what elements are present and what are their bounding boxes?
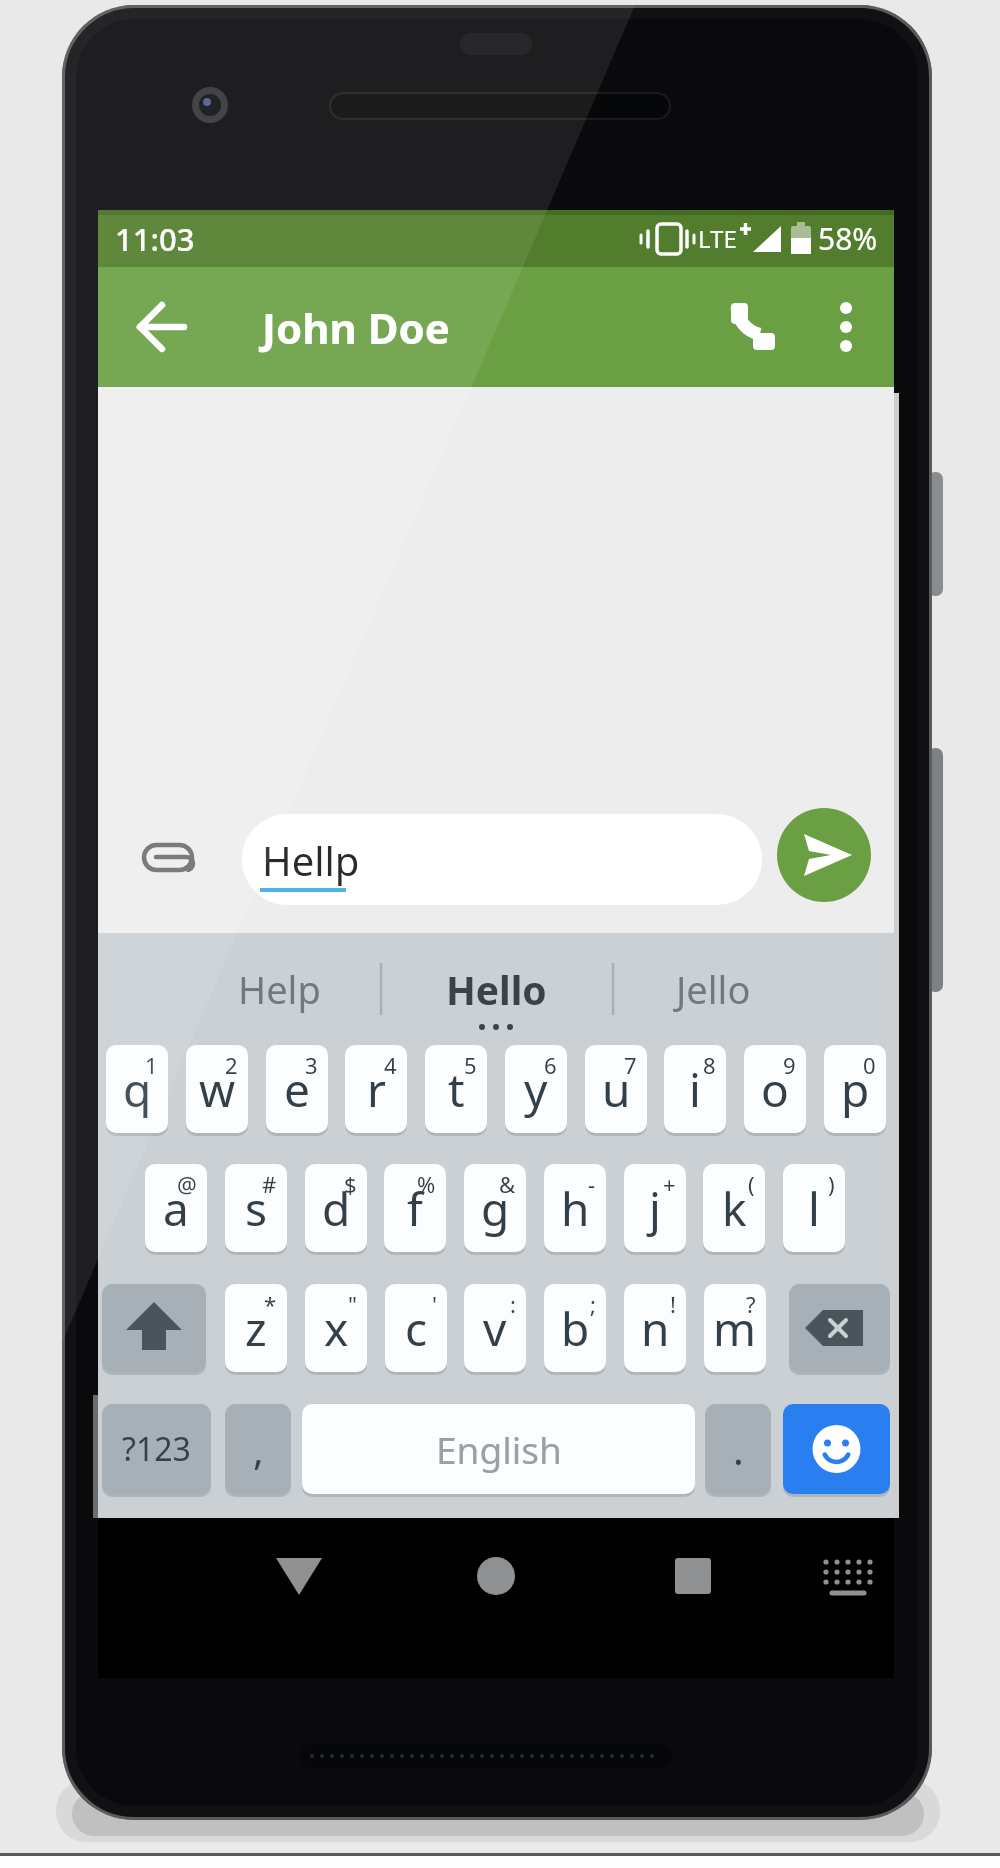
staticText: l [808, 1177, 820, 1240]
staticText: 7 [624, 1050, 637, 1080]
staticText: k [722, 1177, 747, 1240]
button[interactable] [261, 1538, 337, 1614]
button[interactable]: Help [199, 957, 359, 1021]
staticText: c [405, 1297, 428, 1360]
button[interactable]: f [384, 1164, 446, 1252]
staticText: 8 [703, 1050, 716, 1080]
staticText: p [841, 1058, 870, 1121]
staticText: LTE [698, 222, 737, 255]
staticText: : [510, 1289, 516, 1319]
button[interactable] [128, 289, 204, 365]
staticText: i [689, 1058, 701, 1121]
button[interactable]: t [425, 1045, 487, 1133]
staticText: , [253, 1422, 264, 1476]
staticText: ?123 [122, 1427, 191, 1471]
button[interactable]: v [464, 1284, 526, 1372]
button[interactable]: d [305, 1164, 367, 1252]
button[interactable]: q [106, 1045, 168, 1133]
button[interactable]: b [544, 1284, 606, 1372]
button[interactable]: English [302, 1404, 695, 1494]
staticText: e [284, 1058, 310, 1121]
staticText: d [322, 1177, 351, 1240]
button[interactable]: i [664, 1045, 726, 1133]
staticText: Help [238, 963, 321, 1015]
button[interactable] [102, 1284, 206, 1372]
button[interactable]: Jello [633, 957, 793, 1021]
button[interactable]: l [783, 1164, 845, 1252]
button[interactable] [714, 289, 790, 365]
button[interactable] [783, 1404, 890, 1494]
staticText: John Doe [262, 299, 450, 356]
staticText: ; [590, 1289, 596, 1319]
staticText: English [436, 1424, 562, 1474]
button[interactable] [814, 289, 886, 365]
staticText: ! [670, 1289, 676, 1319]
staticText: 58% [818, 218, 878, 259]
button[interactable]: r [345, 1045, 407, 1133]
staticText: h [561, 1177, 590, 1240]
button[interactable]: g [464, 1164, 526, 1252]
button[interactable]: m [704, 1284, 766, 1372]
staticText: o [761, 1058, 789, 1121]
staticText: ? [746, 1289, 756, 1319]
staticText: * [264, 1289, 277, 1319]
staticText: r [367, 1058, 386, 1121]
staticText: 9 [783, 1050, 796, 1080]
button[interactable]: ?123 [102, 1404, 211, 1494]
button[interactable]: p [824, 1045, 886, 1133]
button[interactable]: j [624, 1164, 686, 1252]
button[interactable]: z [225, 1284, 287, 1372]
staticText: y [524, 1058, 548, 1121]
staticText: 0 [863, 1050, 876, 1080]
button[interactable]: s [225, 1164, 287, 1252]
staticText: 4 [384, 1050, 397, 1080]
button[interactable]: y [505, 1045, 567, 1133]
button[interactable] [810, 1538, 886, 1614]
button[interactable]: e [266, 1045, 328, 1133]
staticText: 5 [464, 1050, 477, 1080]
staticText: ' [432, 1289, 437, 1319]
staticText: q [123, 1058, 152, 1121]
staticText: u [602, 1058, 631, 1121]
staticText: @ [177, 1169, 197, 1199]
staticText: Jello [676, 963, 751, 1015]
button[interactable]: w [186, 1045, 248, 1133]
button[interactable] [458, 1538, 534, 1614]
button[interactable]: . [705, 1404, 771, 1494]
staticText: 11:03 [115, 218, 195, 260]
staticText: $ [344, 1169, 357, 1199]
staticText: b [561, 1297, 590, 1360]
staticText: 3 [305, 1050, 318, 1080]
staticText: g [481, 1177, 510, 1240]
staticText: w [199, 1058, 236, 1121]
staticText: x [324, 1297, 349, 1360]
button[interactable]: c [385, 1284, 447, 1372]
button[interactable]: x [305, 1284, 367, 1372]
staticText: v [483, 1297, 507, 1360]
button[interactable]: n [624, 1284, 686, 1372]
button[interactable]: Hellp [242, 814, 762, 905]
staticText: j [649, 1177, 661, 1240]
button[interactable] [789, 1284, 890, 1372]
staticText: t [448, 1058, 465, 1121]
button[interactable] [777, 808, 871, 902]
button[interactable]: h [544, 1164, 606, 1252]
staticText: s [245, 1177, 268, 1240]
staticText: ( [748, 1169, 755, 1199]
staticText: " [348, 1289, 357, 1319]
staticText: ) [828, 1169, 835, 1199]
staticText: - [588, 1169, 596, 1199]
staticText: m [713, 1297, 757, 1360]
button[interactable]: Hello [416, 957, 576, 1021]
staticText: # [262, 1169, 277, 1199]
button[interactable]: , [225, 1404, 291, 1494]
button[interactable]: o [744, 1045, 806, 1133]
button[interactable]: k [703, 1164, 765, 1252]
staticText: + [663, 1169, 676, 1199]
staticText: % [417, 1169, 436, 1199]
button[interactable]: a [145, 1164, 207, 1252]
button[interactable] [130, 819, 206, 895]
button[interactable] [655, 1538, 731, 1614]
button[interactable]: u [585, 1045, 647, 1133]
staticText: 1 [145, 1050, 158, 1080]
